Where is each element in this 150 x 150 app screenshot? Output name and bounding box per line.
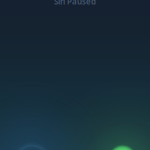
staticText: Siri Paused <box>54 0 96 7</box>
